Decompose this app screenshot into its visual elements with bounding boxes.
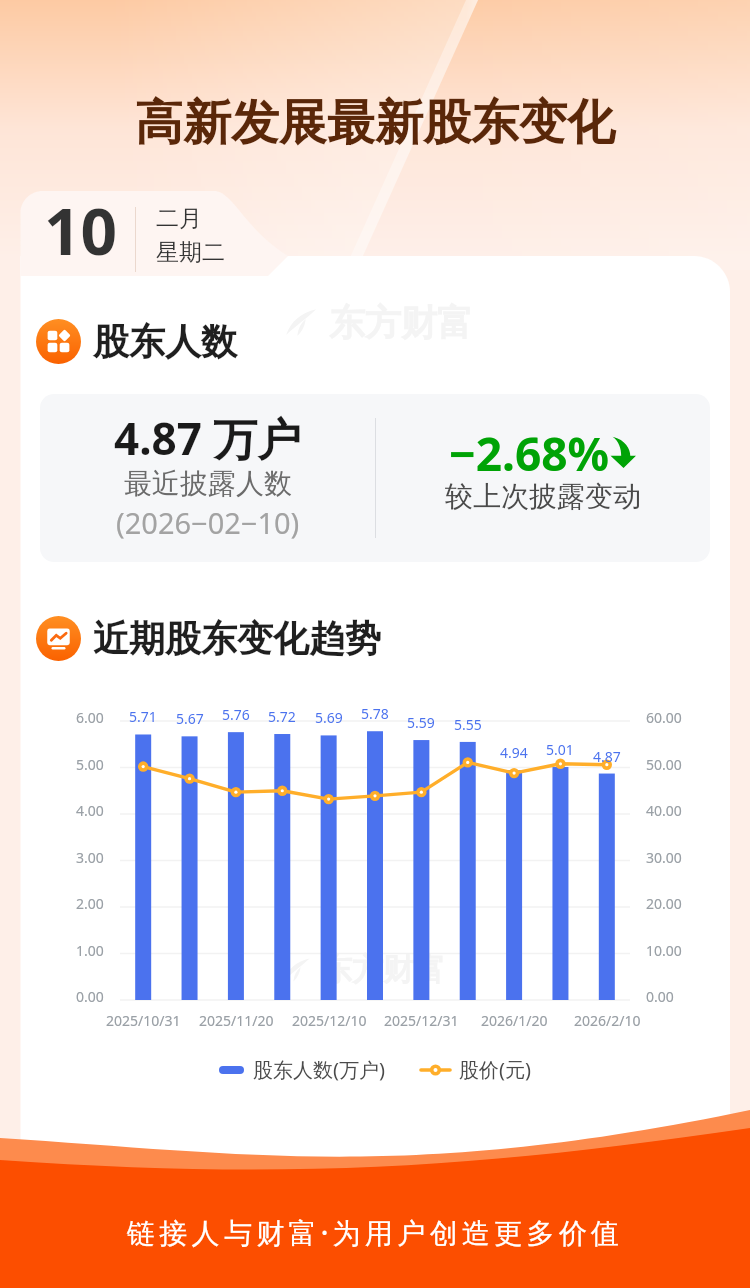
staticText: 股东人数(万户) [253, 1056, 385, 1083]
staticText: 2025/10/31 [106, 1011, 181, 1030]
button[interactable]: 股东人数 [36, 319, 237, 364]
staticText: 5.69 [315, 708, 343, 727]
staticText: 股价(元) [459, 1056, 531, 1083]
staticText: 东方财富 [329, 300, 473, 345]
staticText: 最近披露人数 [124, 466, 292, 501]
staticText: 二月 [156, 204, 202, 233]
button[interactable]: 10 [21, 191, 237, 275]
staticText: 2025/12/31 [384, 1011, 459, 1030]
staticText: 5.01 [546, 740, 574, 759]
staticText: 2026/1/20 [481, 1011, 548, 1030]
staticText: 近期股东变化趋势 [93, 616, 381, 661]
staticText: 5.59 [407, 713, 435, 732]
staticText: 10 [44, 187, 118, 271]
staticText: 较上次披露变动 [445, 479, 641, 514]
staticText: 链接人与财富·为用户创造更多价值 [127, 1213, 624, 1251]
staticText: 30.00 [646, 848, 682, 867]
staticText: 东方财富 [321, 950, 445, 989]
staticText: 4.87 万户 [114, 408, 302, 468]
staticText: 5.67 [176, 709, 204, 728]
staticText: 股东人数 [93, 319, 237, 364]
staticText: 3.00 [76, 848, 104, 867]
staticText: 2025/12/10 [292, 1011, 367, 1030]
staticText: 5.00 [76, 755, 104, 774]
staticText: 4.00 [76, 801, 104, 820]
staticText: 4.87 [593, 747, 621, 766]
staticText: 4.94 [500, 743, 528, 762]
staticText: 2026/2/10 [574, 1011, 641, 1030]
staticText: 星期二 [156, 238, 225, 267]
staticText: 6.00 [76, 708, 104, 727]
staticText: 0.00 [646, 987, 674, 1006]
staticText: 5.55 [454, 715, 482, 734]
staticText: 5.71 [129, 707, 157, 726]
button[interactable]: 近期股东变化趋势 [36, 616, 381, 661]
staticText: 2025/11/20 [199, 1011, 274, 1030]
staticText: 高新发展最新股东变化 [135, 93, 615, 153]
staticText: 60.00 [646, 708, 682, 727]
button[interactable]: 4.87 万户 [40, 394, 710, 562]
staticText: 5.78 [361, 704, 389, 723]
staticText: 10.00 [646, 941, 682, 960]
staticText: 40.00 [646, 801, 682, 820]
staticText: (2026−02−10) [116, 503, 300, 542]
staticText: 5.72 [268, 707, 296, 726]
staticText: 5.76 [222, 705, 250, 724]
staticText: −2.68% [449, 422, 610, 485]
staticText: 0.00 [76, 987, 104, 1006]
staticText: 50.00 [646, 755, 682, 774]
staticText: 2.00 [76, 894, 104, 913]
staticText: 1.00 [76, 941, 104, 960]
staticText: 20.00 [646, 894, 682, 913]
